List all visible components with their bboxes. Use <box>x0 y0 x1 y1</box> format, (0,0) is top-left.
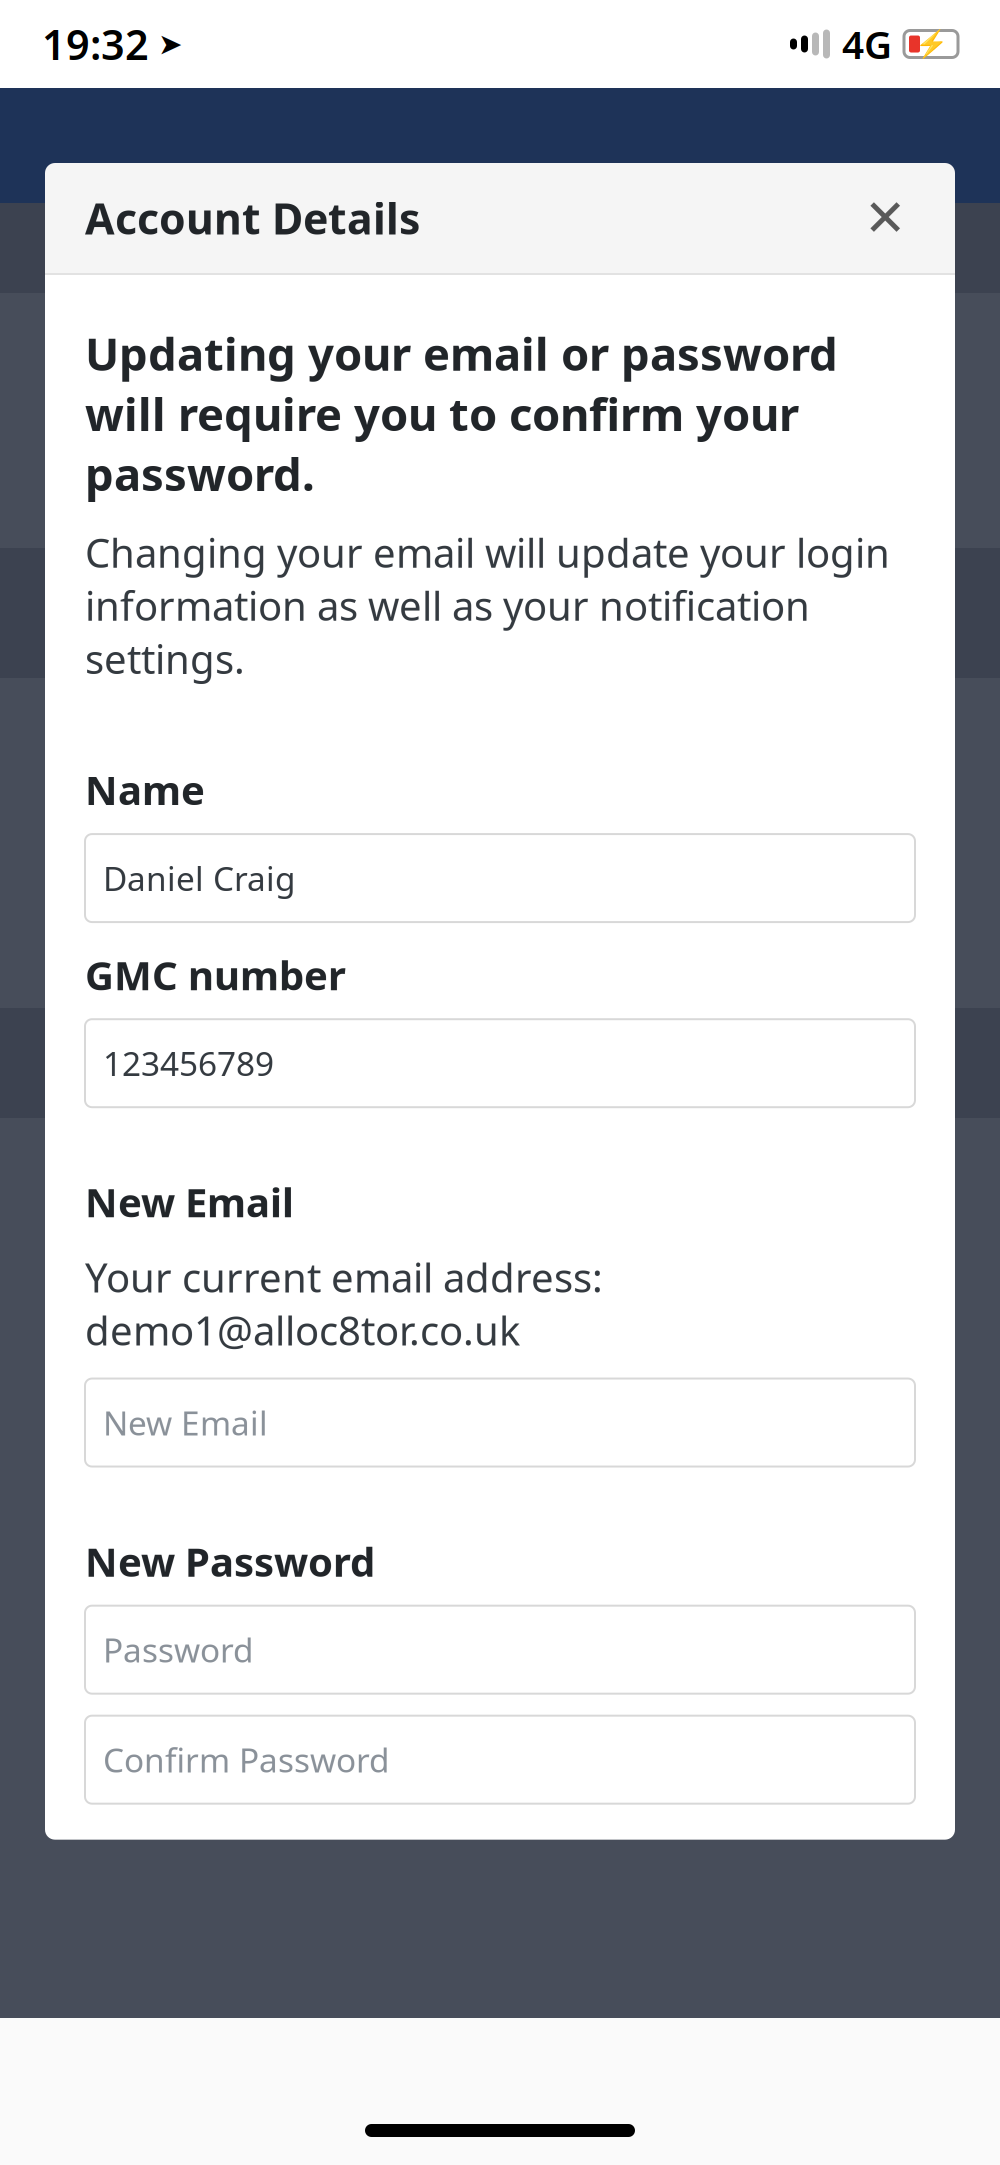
staticText: Daniel Craig <box>103 856 296 900</box>
staticText: Confirm Password <box>103 1737 390 1782</box>
staticText: 123456789 <box>103 1041 274 1085</box>
staticText: Your current email address: <box>85 1250 603 1303</box>
staticText: demo1@alloc8tor.co.uk <box>85 1303 520 1356</box>
staticText: Updating your email or password will req… <box>85 323 838 504</box>
staticText: New Email <box>85 1175 294 1228</box>
staticText: Name <box>85 763 205 816</box>
staticText: Account Details <box>85 190 420 246</box>
staticText: ➤ <box>149 27 183 61</box>
staticText: GMC number <box>85 948 346 1001</box>
staticText: 4G <box>842 18 892 70</box>
staticText: New Password <box>85 1534 375 1588</box>
staticText: ⚡ <box>914 29 947 59</box>
button[interactable]: Close <box>855 188 915 248</box>
staticText: ✕ <box>864 189 906 247</box>
staticText: Password <box>103 1627 254 1672</box>
staticText: Changing your email will update your log… <box>85 526 890 685</box>
staticText: 19:32 <box>42 17 149 71</box>
staticText: New Email <box>103 1400 268 1445</box>
